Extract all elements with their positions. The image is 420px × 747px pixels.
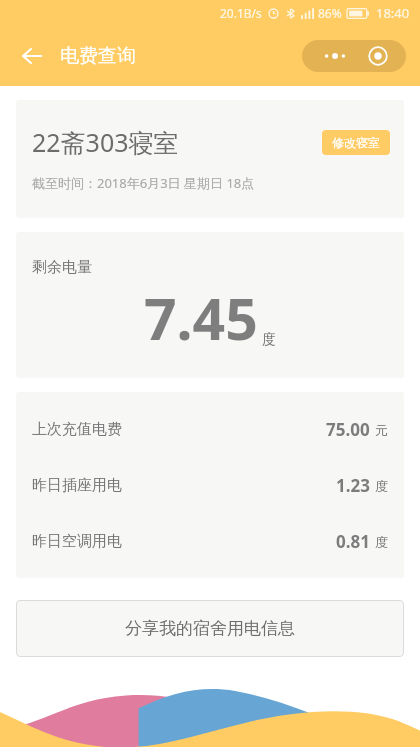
- button[interactable]: Back: [14, 38, 50, 74]
- staticText: 截至时间：2018年6月3日 星期日 18点: [32, 174, 255, 192]
- staticText: 7.45: [144, 279, 258, 357]
- button[interactable]: 昨日空调用电: [32, 530, 388, 553]
- staticText: 度: [375, 478, 388, 494]
- staticText: 86%: [318, 5, 342, 21]
- staticText: 1.23: [336, 474, 370, 497]
- staticText: 昨日插座用电: [32, 476, 336, 495]
- staticText: 剩余电量: [32, 258, 92, 277]
- button[interactable]: 昨日插座用电: [32, 474, 388, 497]
- staticText: 上次充值电费: [32, 420, 326, 439]
- staticText: 18:40: [376, 4, 410, 22]
- staticText: 度: [262, 331, 276, 349]
- staticText: 22斋303寝室: [32, 125, 322, 159]
- staticText: 20.1B/s: [220, 5, 262, 21]
- button[interactable]: 分享我的宿舍用电信息: [16, 600, 404, 657]
- staticText: 度: [375, 534, 388, 550]
- button[interactable]: Menu: [302, 40, 406, 72]
- staticText: 昨日空调用电: [32, 532, 336, 551]
- staticText: 75.00: [326, 418, 370, 441]
- staticText: 分享我的宿舍用电信息: [125, 618, 295, 639]
- button[interactable]: 修改寝室: [322, 130, 390, 155]
- staticText: 元: [375, 422, 388, 438]
- staticText: 修改寝室: [332, 135, 380, 150]
- button[interactable]: 上次充值电费: [32, 418, 388, 441]
- staticText: 电费查询: [60, 44, 302, 68]
- staticText: 0.81: [336, 530, 370, 553]
